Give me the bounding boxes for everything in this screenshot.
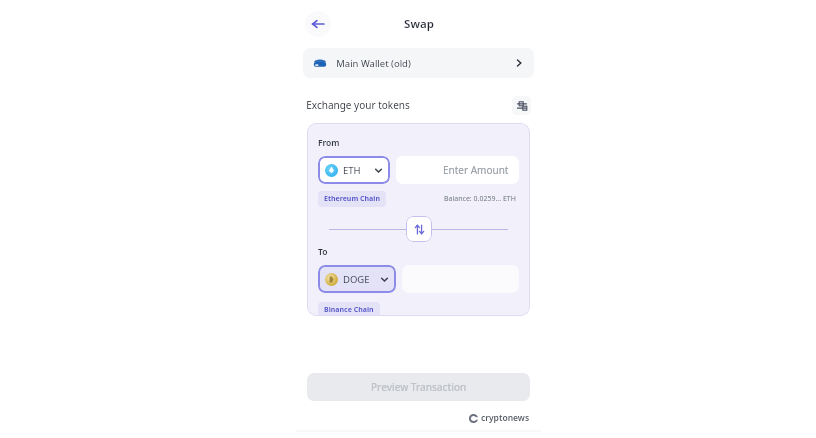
staticText: Swap: [404, 16, 434, 32]
button[interactable]: Main Wallet (old): [303, 48, 534, 78]
staticText: Main Wallet (old): [336, 57, 411, 70]
staticText: Binance Chain: [324, 305, 374, 313]
button[interactable]: Ethereum Chain: [318, 191, 386, 207]
staticText: Preview Transaction: [371, 380, 467, 394]
button[interactable]: DOGE: [318, 265, 396, 293]
staticText: ETH: [343, 164, 361, 177]
staticText: DOGE: [343, 273, 370, 286]
button[interactable]: Settings: [512, 96, 531, 115]
button[interactable]: Swap direction: [406, 216, 432, 242]
button[interactable]: Enter Amount: [396, 156, 519, 184]
staticText: Ethereum Chain: [324, 194, 380, 204]
staticText: Balance: 0.0259... ETH: [444, 194, 516, 204]
button[interactable]: Binance Chain: [318, 302, 380, 316]
staticText: cryptonews: [481, 412, 530, 424]
staticText: Enter Amount: [443, 163, 509, 177]
button[interactable]: ETH: [318, 156, 390, 184]
staticText: Exchange your tokens: [306, 98, 410, 112]
button[interactable]: Back: [305, 11, 331, 37]
staticText: To: [318, 246, 328, 258]
staticText: From: [318, 137, 340, 149]
button[interactable]: Preview Transaction: [307, 373, 530, 401]
